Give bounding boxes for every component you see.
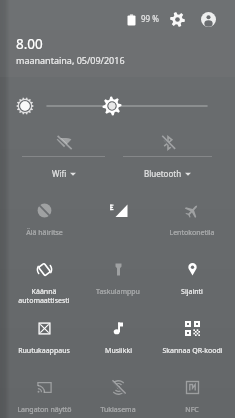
staticText: Tukiasema [100,405,136,415]
staticText: Bluetooth [144,168,182,179]
button[interactable]: User account [197,8,219,30]
button[interactable]: Älä häiritse [7,194,81,253]
staticText: 99 % [141,13,159,24]
button[interactable]: NFC [155,371,229,418]
button[interactable]: Taskulamppu [81,253,155,312]
staticText: Lentokonetila [169,228,215,238]
staticText: NFC [185,405,199,415]
button[interactable]: Bluetooth [123,130,212,182]
staticText: maanantaina, 05/09/2016 [16,54,125,66]
button[interactable]: Wifi [22,130,105,182]
button[interactable]: Brightness [0,89,235,123]
staticText: Ruutukaappaus [18,346,70,356]
staticText: Sijainti [181,287,203,297]
staticText: Älä häiritse [26,228,63,238]
button[interactable] [81,194,155,253]
button[interactable]: Sijainti [155,253,229,312]
staticText: 8.00 [16,35,43,53]
button[interactable]: Settings [166,8,188,30]
button[interactable]: Musiikki [81,312,155,371]
button[interactable]: Käännä automaattisesti [7,253,81,312]
button[interactable]: Lentokonetila [155,194,229,253]
staticText: Langaton näyttö [17,405,72,415]
button[interactable]: Langaton näyttö [7,371,81,418]
staticText: Käännä automaattisesti [18,287,70,305]
button[interactable]: Tukiasema [81,371,155,418]
staticText: Taskulamppu [96,287,140,297]
button[interactable]: Skannaa QR-koodi [155,312,229,371]
staticText: Musiikki [105,346,132,356]
staticText: Skannaa QR-koodi [162,346,223,356]
button[interactable]: Ruutukaappaus [7,312,81,371]
staticText: Wifi [52,168,67,179]
